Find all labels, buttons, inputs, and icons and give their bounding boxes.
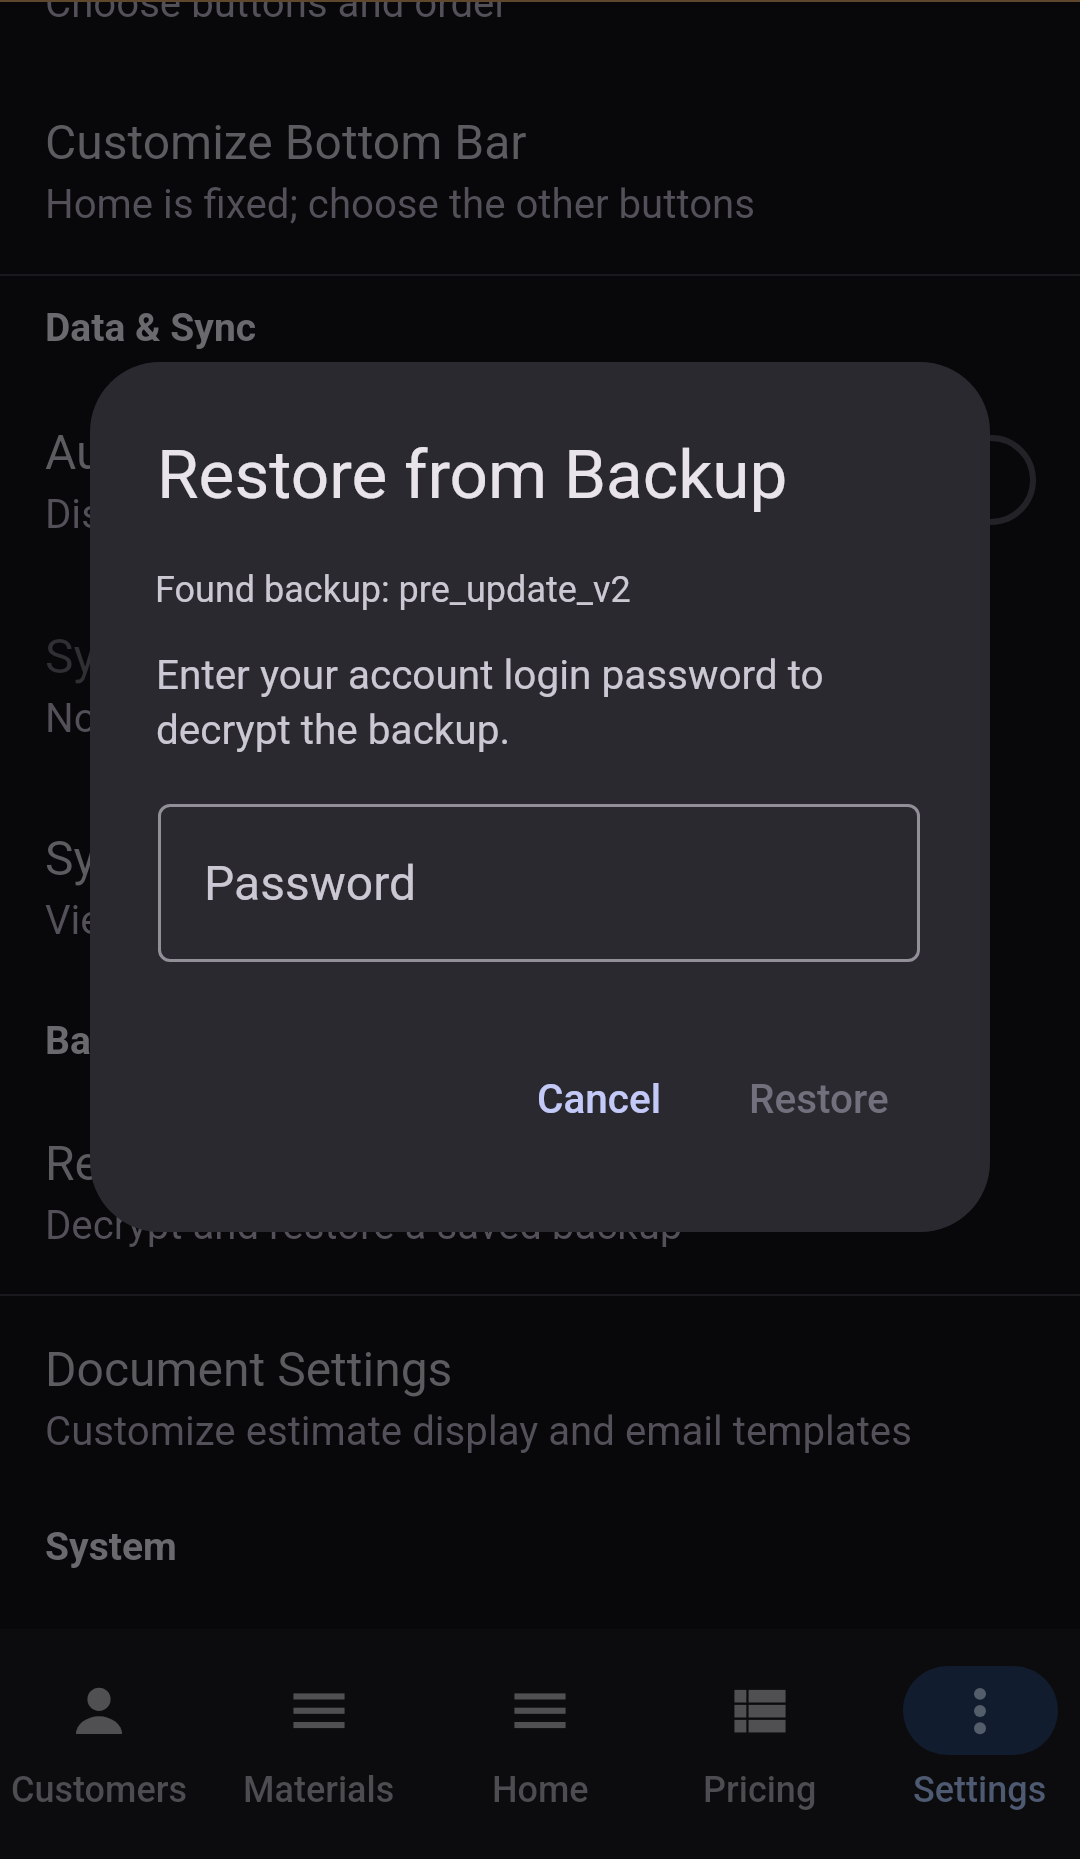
button[interactable]: Pricing xyxy=(650,1629,870,1859)
button[interactable]: Sync Now xyxy=(0,628,1080,830)
button[interactable]: Password xyxy=(158,804,920,962)
staticText: Sync History xyxy=(45,830,313,886)
staticText: Materials xyxy=(243,1769,395,1811)
staticText: Password xyxy=(204,855,417,911)
staticText: Home xyxy=(492,1769,589,1811)
staticText: Found backup: pre_update_v2 xyxy=(155,569,631,611)
staticText: Customers xyxy=(11,1769,187,1811)
button[interactable]: Cancel xyxy=(501,1051,697,1146)
staticText: Data & Sync xyxy=(45,305,257,351)
staticText: Decrypt and restore a saved backup xyxy=(45,1202,683,1249)
button[interactable]: Restore xyxy=(713,1051,925,1146)
staticText: View past syncs xyxy=(45,897,334,944)
button[interactable]: Home xyxy=(430,1629,650,1859)
button[interactable]: Restore from Backup xyxy=(0,1135,1080,1337)
staticText: Cancel xyxy=(537,1075,661,1122)
staticText: Choose buttons and order xyxy=(45,0,509,27)
staticText: Document Settings xyxy=(45,1341,453,1397)
button[interactable]: Customers xyxy=(0,1629,209,1859)
staticText: Settings xyxy=(913,1769,1047,1811)
button[interactable]: Sync History xyxy=(0,830,1080,1032)
staticText: Home is fixed; choose the other buttons xyxy=(45,181,756,228)
staticText: Auto Backup xyxy=(45,424,316,480)
staticText: Disabled xyxy=(45,491,201,538)
button[interactable]: Settings xyxy=(870,1629,1080,1859)
staticText: Enter your account login password to dec… xyxy=(156,651,824,754)
staticText: Restore xyxy=(749,1075,889,1122)
staticText: Restore from Backup xyxy=(157,435,788,514)
staticText: Restore from Backup xyxy=(45,1135,494,1191)
staticText: Not synced xyxy=(45,695,247,742)
button[interactable]: Auto Backup xyxy=(0,424,1080,626)
button[interactable]: Document Settings xyxy=(0,1341,1080,1543)
staticText: Backup xyxy=(45,1018,176,1064)
staticText: System xyxy=(45,1524,177,1570)
staticText: Sync Now xyxy=(45,628,258,684)
button[interactable]: Materials xyxy=(209,1629,429,1859)
staticText: Customize Bottom Bar xyxy=(45,114,527,170)
staticText: Pricing xyxy=(703,1769,817,1811)
staticText: Customize estimate display and email tem… xyxy=(45,1408,912,1455)
